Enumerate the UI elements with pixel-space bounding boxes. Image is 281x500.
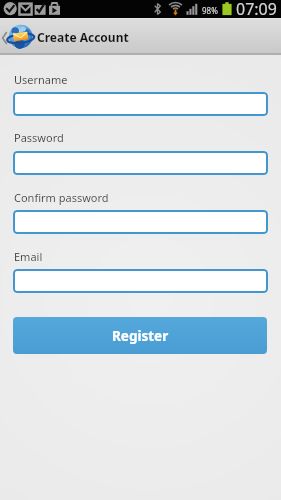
button[interactable]: Create Account — [0, 18, 281, 53]
button[interactable] — [13, 151, 268, 175]
button[interactable] — [13, 210, 268, 234]
staticText: 98% — [202, 5, 218, 16]
staticText: 07:09 — [236, 0, 277, 16]
staticText: Password — [14, 130, 64, 145]
staticText: Username — [14, 72, 68, 87]
staticText: Create Account — [37, 29, 129, 45]
button[interactable] — [13, 269, 268, 293]
staticText: Confirm password — [14, 190, 109, 205]
staticText: Email — [14, 249, 43, 264]
button[interactable] — [13, 92, 268, 116]
staticText: Register — [112, 327, 169, 345]
button[interactable]: Register — [13, 317, 267, 354]
